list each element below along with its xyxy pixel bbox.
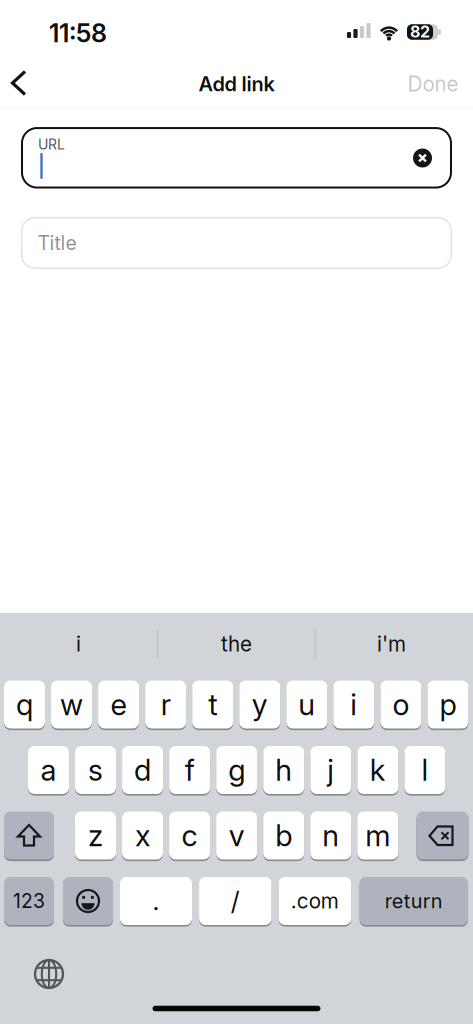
button[interactable]: o bbox=[380, 680, 421, 728]
button[interactable] bbox=[407, 143, 437, 173]
button[interactable]: return bbox=[360, 877, 468, 925]
button[interactable] bbox=[0, 63, 44, 103]
staticText: u bbox=[298, 687, 315, 722]
staticText: / bbox=[231, 886, 240, 916]
button[interactable] bbox=[4, 811, 54, 859]
staticText: f bbox=[185, 752, 195, 788]
staticText: . bbox=[152, 886, 159, 916]
staticText: o bbox=[392, 687, 409, 722]
staticText: l bbox=[421, 752, 428, 788]
staticText: a bbox=[40, 752, 56, 788]
staticText: URL bbox=[38, 136, 65, 153]
staticText: c bbox=[182, 818, 198, 853]
button[interactable]: n bbox=[310, 811, 351, 859]
staticText: y bbox=[252, 687, 268, 722]
staticText: m bbox=[365, 818, 390, 853]
button[interactable]: l bbox=[404, 746, 445, 794]
button[interactable]: Done bbox=[398, 64, 468, 104]
button[interactable]: v bbox=[216, 811, 257, 859]
button[interactable]: i'm bbox=[316, 621, 466, 667]
staticText: p bbox=[439, 687, 456, 722]
staticText: the bbox=[221, 631, 252, 656]
staticText: i bbox=[350, 687, 357, 722]
button[interactable]: e bbox=[98, 680, 139, 728]
button[interactable]: y bbox=[239, 680, 280, 728]
button[interactable] bbox=[416, 811, 468, 859]
staticText: Title bbox=[37, 231, 76, 255]
button[interactable]: i bbox=[3, 621, 153, 667]
button[interactable]: h bbox=[263, 746, 304, 794]
staticText: i'm bbox=[377, 631, 406, 656]
staticText: 11:58 bbox=[49, 18, 107, 48]
staticText: d bbox=[134, 752, 151, 788]
button[interactable]: a bbox=[28, 746, 69, 794]
staticText: t bbox=[208, 687, 217, 722]
button[interactable] bbox=[29, 954, 69, 994]
button[interactable]: w bbox=[51, 680, 92, 728]
button[interactable]: the bbox=[161, 621, 311, 667]
staticText: r bbox=[161, 687, 171, 722]
button[interactable]: i bbox=[333, 680, 374, 728]
staticText: j bbox=[327, 752, 334, 788]
button[interactable]: d bbox=[122, 746, 163, 794]
staticText: i bbox=[76, 631, 81, 656]
button[interactable]: x bbox=[122, 811, 163, 859]
button[interactable]: g bbox=[216, 746, 257, 794]
button[interactable]: u bbox=[286, 680, 327, 728]
staticText: return bbox=[385, 889, 443, 913]
staticText: .com bbox=[291, 888, 339, 913]
button[interactable]: / bbox=[199, 877, 272, 925]
staticText: x bbox=[135, 818, 150, 853]
staticText: Add link bbox=[198, 72, 274, 96]
button[interactable]: f bbox=[169, 746, 210, 794]
staticText: z bbox=[88, 818, 103, 853]
staticText: w bbox=[60, 687, 83, 722]
button[interactable]: j bbox=[310, 746, 351, 794]
staticText: h bbox=[275, 752, 292, 788]
staticText: 82 bbox=[410, 22, 430, 41]
button[interactable]: 123 bbox=[4, 877, 54, 925]
button[interactable]: m bbox=[357, 811, 398, 859]
button[interactable]: .com bbox=[279, 877, 351, 925]
staticText: k bbox=[370, 752, 386, 788]
button[interactable] bbox=[21, 217, 452, 269]
staticText: 123 bbox=[13, 889, 45, 913]
staticText: e bbox=[111, 687, 127, 722]
staticText: v bbox=[229, 818, 245, 853]
staticText: n bbox=[322, 818, 339, 853]
button[interactable]: p bbox=[427, 680, 468, 728]
staticText: s bbox=[88, 752, 103, 788]
button[interactable] bbox=[21, 127, 452, 189]
staticText: b bbox=[275, 818, 292, 853]
button[interactable]: c bbox=[169, 811, 210, 859]
staticText: q bbox=[16, 687, 33, 722]
button[interactable]: q bbox=[4, 680, 45, 728]
staticText: Done bbox=[407, 71, 458, 96]
staticText: g bbox=[228, 752, 245, 788]
button[interactable]: k bbox=[357, 746, 398, 794]
button[interactable]: t bbox=[192, 680, 233, 728]
button[interactable]: z bbox=[75, 811, 116, 859]
button[interactable]: s bbox=[75, 746, 116, 794]
button[interactable] bbox=[63, 877, 113, 925]
button[interactable]: r bbox=[145, 680, 186, 728]
button[interactable]: b bbox=[263, 811, 304, 859]
button[interactable]: . bbox=[120, 877, 192, 925]
